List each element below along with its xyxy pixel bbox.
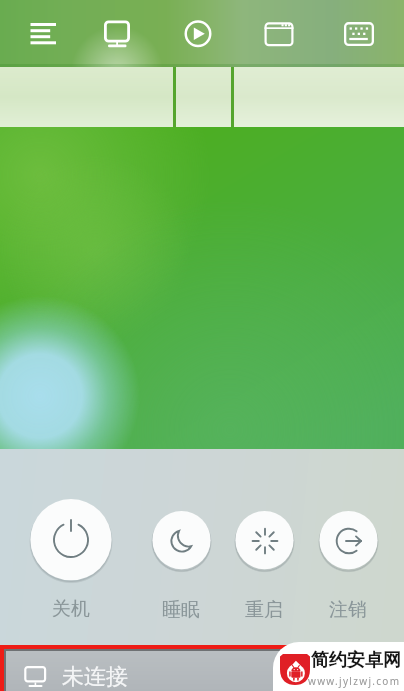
button[interactable]: 未连接 bbox=[6, 651, 404, 691]
button[interactable]: Keyboard bbox=[324, 0, 394, 67]
button[interactable] bbox=[176, 67, 231, 127]
button[interactable]: Shut down bbox=[21, 498, 121, 621]
staticText: www.jylzwj.com bbox=[308, 674, 401, 688]
button[interactable]: Display bbox=[82, 0, 152, 67]
button[interactable]: Windows bbox=[244, 0, 314, 67]
staticText: 注销 bbox=[329, 598, 367, 622]
button[interactable]: Menu bbox=[8, 0, 78, 67]
button[interactable] bbox=[0, 67, 173, 127]
button[interactable]: Log off bbox=[298, 510, 398, 622]
staticText: 重启 bbox=[245, 598, 283, 622]
button[interactable] bbox=[234, 67, 404, 127]
button[interactable]: Play bbox=[163, 0, 233, 67]
staticText: 睡眠 bbox=[162, 598, 200, 622]
button[interactable]: Restart bbox=[214, 510, 314, 622]
button[interactable]: Sleep bbox=[131, 510, 231, 622]
staticText: 关机 bbox=[52, 597, 90, 621]
staticText: 未连接 bbox=[62, 663, 128, 691]
staticText: 简约安卓网 bbox=[311, 649, 401, 672]
